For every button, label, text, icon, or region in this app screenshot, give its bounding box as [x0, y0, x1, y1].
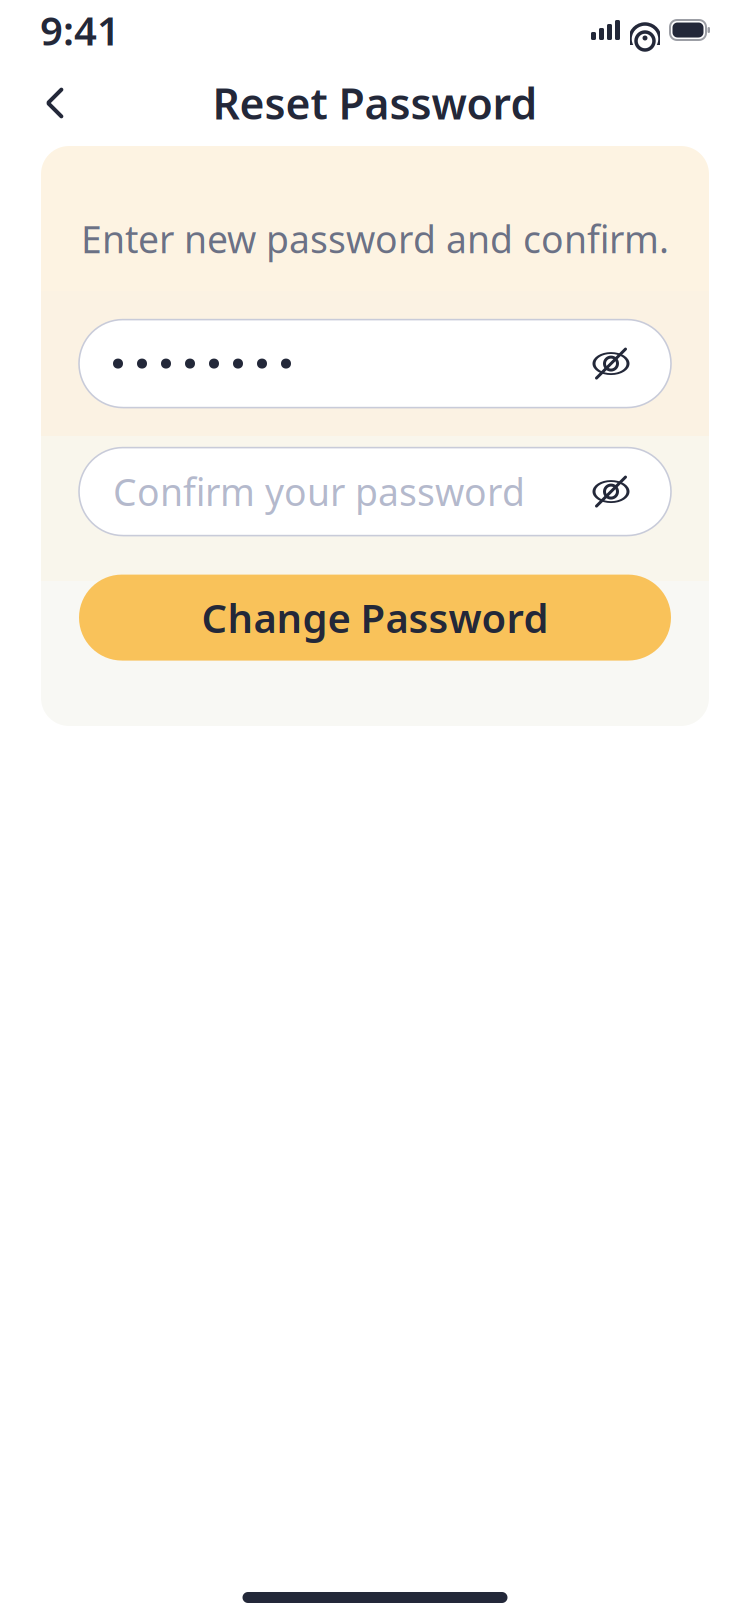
staticText: Confirm your password: [113, 467, 525, 516]
staticText: Enter new password and confirm.: [81, 214, 669, 264]
staticText: 9:41: [40, 3, 120, 56]
button[interactable]: Show password: [585, 330, 637, 398]
button[interactable]: Change Password: [79, 575, 671, 661]
staticText: Change Password: [201, 591, 548, 644]
staticText: Reset Password: [212, 75, 537, 131]
button[interactable]: Back: [24, 72, 86, 134]
button[interactable]: Show password: [585, 458, 637, 526]
